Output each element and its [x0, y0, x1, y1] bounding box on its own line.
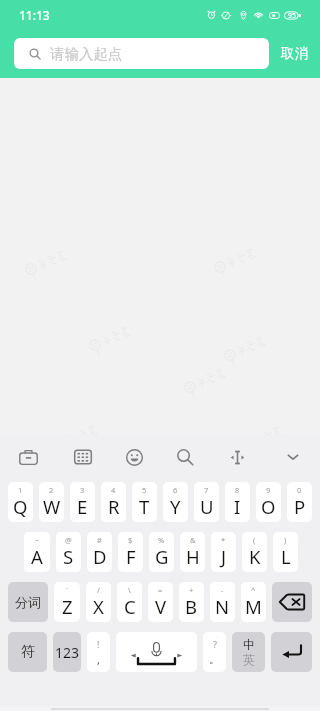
- staticText: 0: [297, 485, 302, 495]
- staticText: 5: [142, 485, 147, 495]
- button[interactable]: ^: [241, 582, 266, 622]
- staticText: @: [65, 535, 72, 545]
- button[interactable]: 符: [8, 632, 47, 672]
- staticText: J: [221, 544, 227, 569]
- button[interactable]: &: [180, 532, 205, 572]
- staticText: N: [215, 594, 230, 619]
- button[interactable]: ?: [203, 632, 226, 672]
- button[interactable]: 6: [163, 482, 188, 522]
- staticText: G: [155, 544, 169, 569]
- button[interactable]: 分词: [8, 582, 48, 622]
- staticText: A: [31, 544, 43, 569]
- staticText: Z: [62, 594, 73, 619]
- staticText: Y: [170, 494, 181, 519]
- staticText: D: [93, 544, 107, 569]
- staticText: =: [158, 585, 163, 595]
- staticText: %: [158, 535, 165, 545]
- staticText: \: [128, 585, 131, 595]
- button[interactable]: %: [149, 532, 174, 572]
- button[interactable]: Clipboard: [64, 438, 102, 476]
- button[interactable]: +: [179, 582, 204, 622]
- button[interactable]: 4: [101, 482, 126, 522]
- button[interactable]: Move cursor: [218, 438, 256, 476]
- staticText: S: [63, 544, 74, 569]
- button[interactable]: \: [117, 582, 142, 622]
- staticText: -: [221, 585, 224, 595]
- staticText: B: [185, 594, 198, 619]
- button[interactable]: 2: [39, 482, 64, 522]
- staticText: 分词: [15, 594, 41, 610]
- staticText: X: [93, 594, 104, 619]
- button[interactable]: 请输入起点: [14, 38, 269, 69]
- button[interactable]: 5: [132, 482, 157, 522]
- button[interactable]: 7: [194, 482, 219, 522]
- button[interactable]: 0: [287, 482, 312, 522]
- staticText: 符: [21, 643, 35, 661]
- staticText: $: [128, 535, 133, 545]
- button[interactable]: `: [54, 582, 80, 622]
- staticText: 123: [55, 643, 80, 662]
- staticText: ^: [251, 585, 256, 595]
- button[interactable]: @: [56, 532, 81, 572]
- staticText: 1: [18, 485, 23, 495]
- staticText: 7: [204, 485, 209, 495]
- button[interactable]: =: [148, 582, 173, 622]
- staticText: 6: [173, 485, 178, 495]
- button[interactable]: Space: [116, 632, 197, 672]
- staticText: 3: [80, 485, 85, 495]
- staticText: O: [261, 494, 276, 519]
- button[interactable]: Hide keyboard: [274, 438, 312, 476]
- button[interactable]: 123: [53, 632, 81, 672]
- staticText: *: [221, 535, 226, 545]
- staticText: V: [155, 594, 167, 619]
- staticText: E: [77, 494, 88, 519]
- staticText: I: [234, 494, 241, 519]
- staticText: &: [190, 535, 196, 545]
- staticText: L: [281, 544, 291, 569]
- staticText: 95: [288, 11, 296, 20]
- staticText: `: [66, 585, 69, 595]
- staticText: 8: [235, 485, 240, 495]
- staticText: 请输入起点: [50, 45, 123, 63]
- staticText: 9: [266, 485, 271, 495]
- staticText: T: [139, 494, 150, 519]
- staticText: 2: [49, 485, 54, 495]
- staticText: !: [97, 638, 100, 650]
- staticText: H: [186, 544, 200, 569]
- button[interactable]: #: [87, 532, 112, 572]
- staticText: ,: [97, 652, 100, 667]
- button[interactable]: *: [211, 532, 236, 572]
- staticText: 取消: [281, 45, 308, 62]
- staticText: +: [189, 585, 194, 595]
- staticText: Q: [13, 494, 28, 519]
- button[interactable]: ): [273, 532, 298, 572]
- staticText: F: [126, 544, 136, 569]
- staticText: /: [97, 585, 100, 595]
- button[interactable]: 9: [256, 482, 281, 522]
- staticText: W: [43, 494, 61, 519]
- button[interactable]: Emoji: [115, 438, 153, 476]
- button[interactable]: 1: [8, 482, 33, 522]
- staticText: (: [253, 535, 256, 545]
- button[interactable]: Backspace: [272, 582, 312, 622]
- staticText: ): [284, 535, 287, 545]
- button[interactable]: /: [86, 582, 111, 622]
- button[interactable]: $: [118, 532, 143, 572]
- button[interactable]: 3: [70, 482, 95, 522]
- button[interactable]: ~: [24, 532, 50, 572]
- button[interactable]: Enter: [271, 632, 312, 672]
- button[interactable]: (: [242, 532, 267, 572]
- button[interactable]: Search: [166, 438, 204, 476]
- staticText: ?: [213, 638, 217, 650]
- button[interactable]: -: [210, 582, 235, 622]
- button[interactable]: 中: [232, 632, 265, 672]
- button[interactable]: 8: [225, 482, 250, 522]
- staticText: 11:13: [19, 7, 50, 23]
- button[interactable]: Toolbox: [9, 438, 47, 476]
- staticText: 英: [243, 652, 255, 667]
- button[interactable]: 取消: [269, 38, 320, 69]
- staticText: K: [249, 544, 261, 569]
- staticText: C: [124, 594, 136, 619]
- staticText: 中: [243, 637, 255, 652]
- button[interactable]: !: [87, 632, 110, 672]
